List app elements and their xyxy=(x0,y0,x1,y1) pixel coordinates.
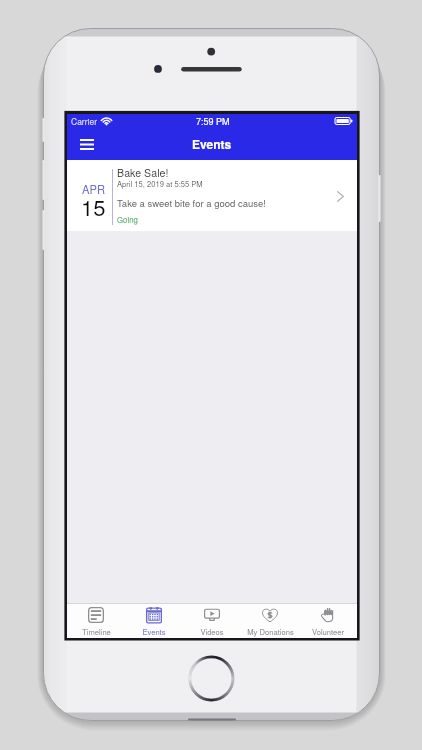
staticText: Events xyxy=(192,135,232,152)
button[interactable]: APR xyxy=(67,160,357,231)
staticText: Timeline xyxy=(82,626,111,637)
staticText: 7:59 PM xyxy=(196,115,230,128)
staticText: APR xyxy=(82,181,106,197)
button[interactable]: Events xyxy=(125,604,183,638)
button[interactable]: My Donations xyxy=(241,604,299,638)
button[interactable]: Timeline xyxy=(67,604,125,638)
staticText: April 15, 2019 at 5:55 PM xyxy=(117,178,203,189)
staticText: Going xyxy=(117,214,138,225)
staticText: Volunteer xyxy=(312,626,344,637)
staticText: Bake Sale! xyxy=(117,165,169,180)
button[interactable]: Volunteer xyxy=(299,604,357,638)
staticText: 15 xyxy=(81,191,106,223)
staticText: Events xyxy=(142,626,166,637)
button[interactable]: Open navigation menu xyxy=(71,130,103,158)
staticText: Carrier xyxy=(71,115,97,127)
staticText: Take a sweet bite for a good cause! xyxy=(117,196,266,210)
staticText: My Donations xyxy=(247,626,294,637)
staticText: Videos xyxy=(200,626,224,637)
button[interactable]: Videos xyxy=(183,604,241,638)
